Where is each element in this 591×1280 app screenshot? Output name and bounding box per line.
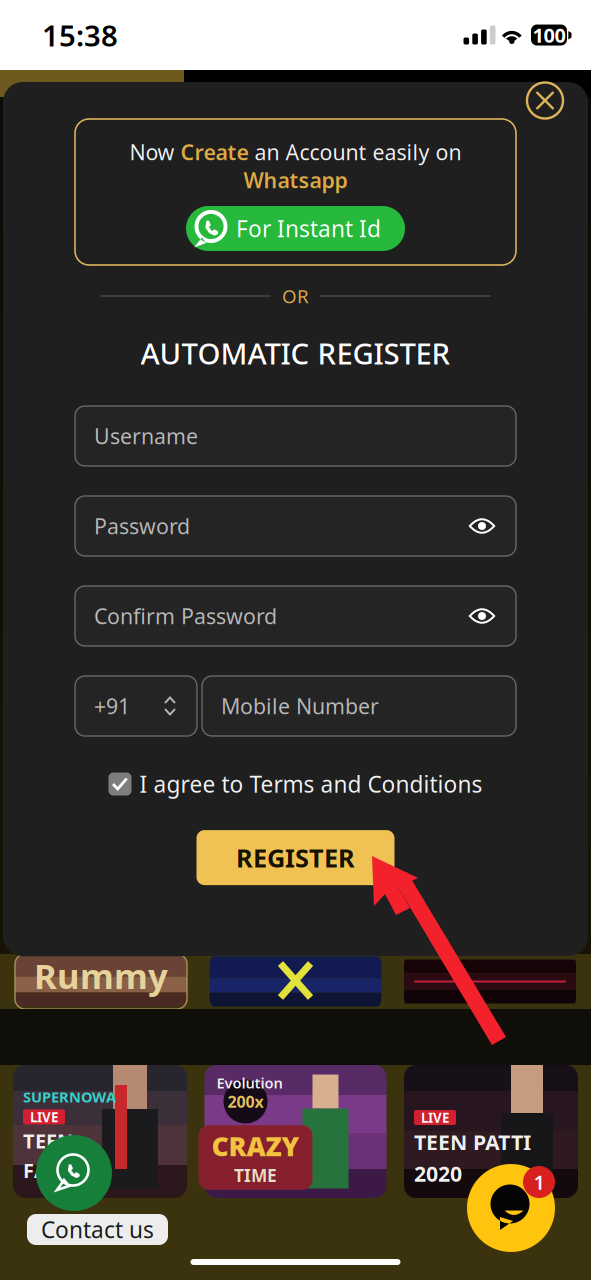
button[interactable]: +91 <box>75 676 197 736</box>
button[interactable]: I agree to Terms and Conditions <box>108 769 482 799</box>
button[interactable]: REGISTER <box>196 830 394 885</box>
button[interactable]: Close <box>525 80 565 120</box>
staticText: 100 <box>532 22 565 48</box>
staticText: TEEN <box>23 1127 73 1154</box>
button[interactable]: Chat support <box>467 1163 555 1253</box>
staticText: Password <box>94 512 190 540</box>
button[interactable]: Username <box>75 406 516 466</box>
button[interactable]: For Instant Id <box>186 206 405 251</box>
staticText: Rummy <box>34 952 168 998</box>
staticText: an Account easily on <box>248 138 461 166</box>
staticText: 2020 <box>414 1159 462 1188</box>
staticText: For Instant Id <box>236 213 381 243</box>
staticText: LIVE <box>30 1108 58 1126</box>
staticText: Confirm Password <box>94 602 277 630</box>
staticText: TEEN PATTI <box>414 1128 531 1156</box>
staticText: LIVE <box>421 1109 449 1126</box>
button[interactable]: Contact us <box>27 1214 168 1245</box>
staticText: 200x <box>227 1091 263 1112</box>
staticText: REGISTER <box>236 841 355 874</box>
staticText: AUTOMATIC REGISTER <box>140 333 450 372</box>
button[interactable]: Confirm Password <box>75 586 516 646</box>
staticText: Now <box>129 138 180 166</box>
staticText: SUPERNOWA <box>23 1087 116 1106</box>
staticText: 1 <box>533 1169 544 1195</box>
staticText: OR <box>282 284 309 308</box>
staticText: Create <box>180 138 248 166</box>
button[interactable]: Mobile Number <box>202 676 516 736</box>
button[interactable]: WhatsApp contact <box>36 1135 112 1211</box>
staticText: I agree to Terms and Conditions <box>139 769 482 799</box>
staticText: Evolution <box>216 1073 282 1092</box>
staticText: Username <box>94 422 198 450</box>
staticText: 15:38 <box>42 15 118 54</box>
staticText: TIME <box>234 1164 277 1187</box>
staticText: FA <box>23 1157 48 1184</box>
staticText: Mobile Number <box>221 692 379 720</box>
staticText: Contact us <box>41 1214 154 1244</box>
staticText: +91 <box>94 692 130 720</box>
staticText: Whatsapp <box>243 166 347 194</box>
button[interactable]: Password <box>75 496 516 556</box>
staticText: CRAZY <box>211 1128 299 1164</box>
